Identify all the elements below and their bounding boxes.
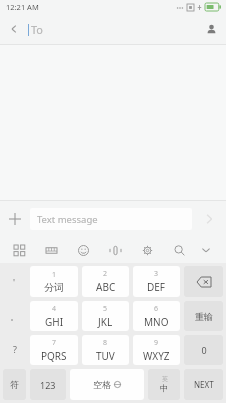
staticText: ' [13,276,16,288]
staticText: 12:21 AM [6,2,39,12]
button[interactable]: Text message [30,208,192,230]
button[interactable]: 8 [82,335,129,365]
staticText: MNO [144,315,169,329]
staticText: ? [13,343,17,355]
button[interactable]: 7 [30,335,78,365]
button[interactable]: Backspace [184,266,223,297]
staticText: 0 [201,344,207,356]
staticText: DEF [147,280,166,294]
staticText: 中 [160,383,169,394]
button[interactable]: Switch language [148,369,180,400]
button[interactable]: ? [1,334,28,364]
staticText: 9 [154,338,159,348]
staticText: GHI [45,315,64,329]
staticText: To [31,22,44,37]
button[interactable]: Voice input [106,241,124,259]
button[interactable]: Back [0,15,28,43]
button[interactable]: 123 [30,369,66,400]
staticText: 分词 [44,281,64,294]
button[interactable]: 空格 [70,369,144,400]
button[interactable]: 2 [82,266,129,297]
button[interactable]: Apps [10,241,28,259]
button[interactable]: Add attachment [0,204,30,234]
button[interactable]: Contacts [196,14,226,44]
button[interactable]: ' [1,267,28,297]
staticText: 符 [10,379,19,390]
staticText: 7 [52,338,57,348]
staticText: 英 [162,375,168,383]
button[interactable]: NEXT [184,369,223,400]
staticText: 2 [103,269,108,279]
staticText: 。 [10,311,19,322]
button[interactable]: 重输 [184,301,223,331]
button[interactable]: 3 [133,266,180,297]
button[interactable]: 。 [1,301,28,331]
button[interactable]: 9 [133,335,180,365]
staticText: 8 [103,338,108,348]
staticText: TUV [96,349,115,363]
staticText: 123 [40,379,56,391]
staticText: 空格 [93,379,111,390]
staticText: 重输 [195,311,213,322]
button[interactable]: 5 [82,301,129,331]
staticText: JKL [98,315,113,329]
button[interactable]: Keyboard [42,241,60,259]
button[interactable]: 0 [184,335,223,365]
staticText: WXYZ [143,349,170,363]
button[interactable]: 6 [133,301,180,331]
staticText: PQRS [41,349,67,363]
button[interactable]: 4 [30,301,78,331]
button[interactable]: Hide keyboard [196,240,216,260]
button[interactable]: Settings [138,241,156,259]
staticText: 6 [154,304,159,314]
staticText: 1 [52,270,57,280]
button[interactable]: Search [170,241,188,259]
button[interactable]: Emoji [74,241,92,259]
staticText: 5 [103,304,108,314]
staticText: ABC [96,280,116,294]
button[interactable]: 符 [3,369,26,400]
button[interactable]: 1 [30,266,78,297]
staticText: 3 [154,269,159,279]
staticText: 4 [52,304,57,314]
staticText: NEXT [194,379,214,390]
staticText: Text message [37,213,98,226]
